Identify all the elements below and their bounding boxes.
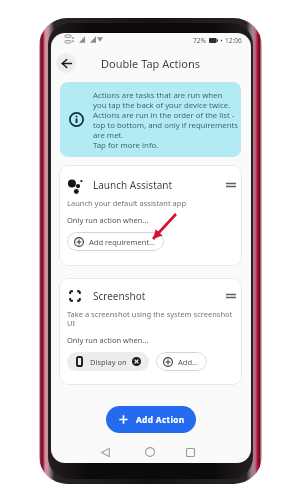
button[interactable]: Actions are tasks that are run when you …: [60, 82, 241, 157]
staticText: Add Action: [136, 414, 185, 425]
staticText: Take a screenshot using the system scree…: [67, 309, 238, 328]
button[interactable]: Add Action: [106, 406, 196, 433]
staticText: 72%: [193, 36, 206, 45]
staticText: Actions are tasks that are run when you …: [93, 90, 239, 150]
button[interactable]: Add...: [156, 352, 207, 371]
button[interactable]: Recent apps: [180, 442, 200, 462]
button[interactable]: Back: [95, 442, 115, 462]
button[interactable]: Add requirement...: [67, 232, 164, 251]
button[interactable]: Reorder action: [224, 178, 238, 192]
staticText: Only run action when...: [67, 215, 149, 225]
staticText: Add requirement...: [89, 237, 156, 247]
staticText: 12:06: [225, 36, 242, 45]
button[interactable]: Back: [56, 53, 76, 73]
staticText: Screenshot: [93, 289, 146, 303]
button[interactable]: Display on: [67, 352, 149, 371]
staticText: Only run action when...: [67, 335, 149, 345]
staticText: Add...: [178, 357, 199, 367]
button[interactable]: Reorder action: [224, 289, 238, 303]
staticText: Launch your default assistant app: [67, 198, 187, 208]
staticText: Display on: [90, 357, 127, 367]
button[interactable]: Home: [140, 442, 160, 462]
staticText: Double Tap Actions: [101, 56, 201, 71]
staticText: Launch Assistant: [93, 178, 173, 192]
